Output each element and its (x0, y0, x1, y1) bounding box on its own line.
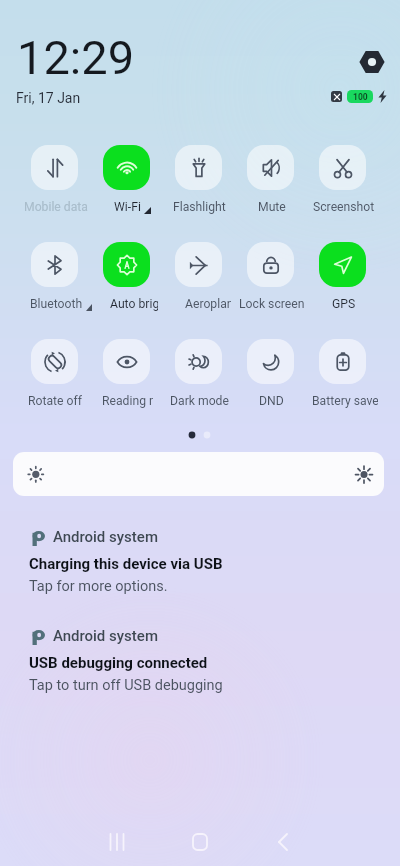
button[interactable]: Lock screen (247, 242, 294, 287)
button[interactable]: Bluetooth (31, 242, 78, 287)
button[interactable]: DND (247, 339, 294, 384)
button[interactable]: Home (171, 813, 228, 866)
button[interactable]: Aeroplane mode (175, 242, 222, 287)
staticText: Android system (53, 627, 158, 645)
staticText: Lock screen (239, 297, 305, 311)
button[interactable]: Settings (358, 48, 386, 76)
staticText: Bluetooth (30, 297, 83, 311)
staticText: GPS (332, 297, 356, 311)
staticText: Flashlight (173, 200, 226, 214)
button[interactable]: Rotate off (31, 339, 78, 384)
staticText: Tap for more options. (29, 578, 168, 595)
button[interactable]: Mobile data (31, 145, 78, 190)
button[interactable]: Dark mode (175, 339, 222, 384)
staticText: DND (259, 394, 284, 408)
button[interactable]: Recents (88, 813, 145, 866)
staticText: 12:29 (17, 30, 135, 85)
button[interactable]: Battery saver (319, 339, 366, 384)
button[interactable]: Mute (247, 145, 294, 190)
button[interactable]: Auto brightness (103, 242, 150, 287)
staticText: Mobile data (24, 200, 88, 214)
staticText: Aeroplane mode (185, 297, 231, 311)
button[interactable]: Reading mode (103, 339, 150, 384)
staticText: Fri, 17 Jan (16, 90, 81, 106)
staticText: 100 (353, 92, 368, 102)
staticText: Wi-Fi (114, 200, 141, 214)
staticText: Auto brightness (110, 297, 158, 311)
button[interactable]: GPS (319, 242, 366, 287)
button[interactable]: Wi-Fi (103, 145, 150, 190)
button[interactable]: Flashlight (175, 145, 222, 190)
button[interactable]: Brightness (13, 452, 384, 496)
staticText: Tap to turn off USB debugging (29, 677, 223, 694)
button[interactable]: Android system (0, 528, 400, 608)
button[interactable]: Android system (0, 627, 400, 707)
staticText: Reading mode (102, 394, 153, 408)
staticText: Mute (258, 200, 286, 214)
button[interactable]: Screenshot (319, 145, 366, 190)
staticText: Rotate off (28, 394, 82, 408)
staticText: USB debugging connected (29, 654, 208, 672)
staticText: Battery saver (312, 394, 378, 408)
staticText: Screenshot (313, 200, 375, 214)
staticText: Charging this device via USB (29, 555, 223, 573)
staticText: Dark mode (170, 394, 229, 408)
staticText: Android system (53, 528, 158, 546)
